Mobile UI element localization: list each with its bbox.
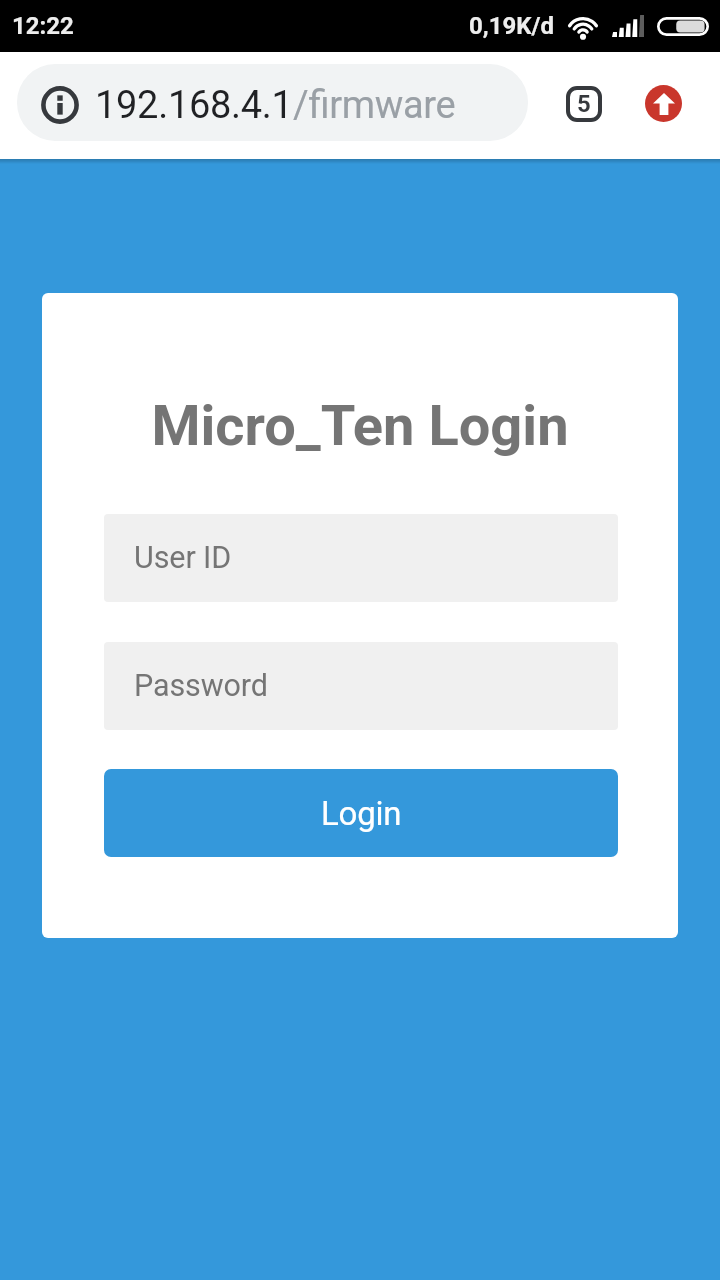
- staticText: Password: [134, 668, 268, 704]
- staticText: User ID: [134, 540, 232, 576]
- staticText: Login: [321, 794, 402, 833]
- staticText: 12:22: [12, 12, 74, 40]
- staticText: 192.168.4.1: [95, 83, 293, 128]
- staticText: Micro_Ten Login: [42, 393, 678, 459]
- button[interactable]: User ID: [104, 514, 618, 602]
- button[interactable]: Login: [104, 769, 618, 857]
- button[interactable]: Tabs, 5 open: [563, 83, 605, 125]
- button[interactable]: Password: [104, 642, 618, 730]
- button[interactable]: 192.168.4.1: [17, 64, 528, 141]
- staticText: /firmware: [293, 83, 456, 128]
- staticText: 0,19K/d: [469, 12, 554, 40]
- staticText: 5: [577, 90, 591, 118]
- button[interactable]: Update available: [645, 85, 682, 122]
